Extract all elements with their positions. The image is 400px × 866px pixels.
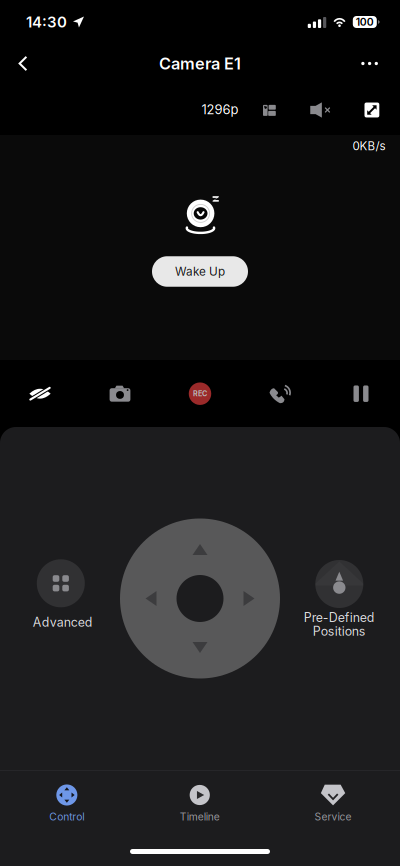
button[interactable]: 1296p — [192, 91, 248, 127]
button[interactable]: Full screen — [352, 92, 392, 128]
staticText: Wake Up — [175, 264, 225, 279]
button[interactable]: Timeline — [133, 770, 266, 832]
button[interactable]: Mute — [300, 92, 340, 128]
button[interactable]: Pause — [324, 360, 398, 427]
staticText: REC — [193, 389, 207, 398]
button[interactable]: Control — [0, 770, 133, 832]
button[interactable]: Back — [1, 43, 45, 84]
staticText: Service — [314, 811, 351, 823]
button[interactable]: Snapshot — [83, 360, 157, 427]
button[interactable]: Advanced — [5, 551, 117, 637]
button[interactable]: Wake Up — [152, 256, 248, 287]
staticText: 100 — [356, 16, 374, 28]
staticText: 1296p — [201, 101, 238, 117]
staticText: 14:30 — [26, 13, 67, 31]
button[interactable]: Privacy mode — [3, 360, 77, 427]
staticText: Control — [49, 811, 84, 823]
staticText: Positions — [313, 624, 366, 639]
button[interactable]: Layout view — [249, 92, 289, 128]
button[interactable]: Service — [266, 770, 400, 832]
staticText: Pre-Defined — [304, 610, 375, 625]
staticText: Timeline — [180, 811, 220, 823]
staticText: Advanced — [33, 615, 93, 630]
button[interactable]: More options — [348, 43, 392, 84]
button[interactable]: Pre-Defined — [278, 552, 400, 652]
staticText: Camera E1 — [159, 54, 241, 73]
button[interactable]: Record — [163, 360, 237, 427]
button[interactable]: Two-way talk — [243, 360, 317, 427]
staticText: 0KB/s — [352, 139, 385, 153]
